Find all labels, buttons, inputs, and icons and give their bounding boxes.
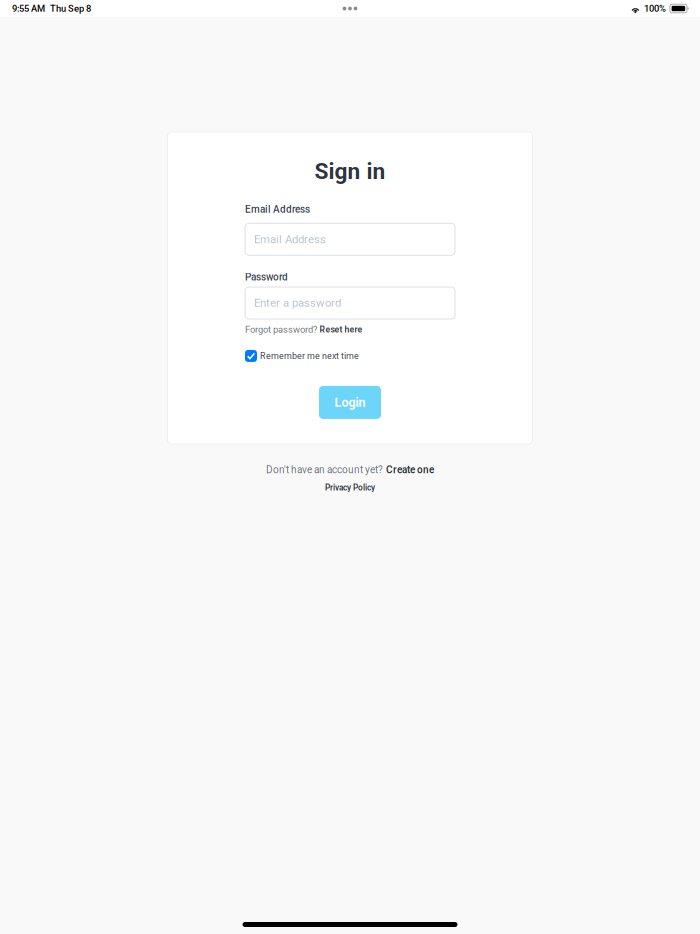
staticText: Email Address: [245, 204, 310, 215]
button[interactable]: Reset here: [319, 324, 362, 335]
staticText: Password: [245, 271, 288, 283]
staticText: Create one: [386, 464, 434, 476]
staticText: 100%: [644, 3, 666, 14]
staticText: Sign in: [314, 158, 385, 185]
staticText: Email Address: [254, 233, 326, 246]
staticText: Enter a password: [254, 296, 341, 310]
button[interactable]: Email Address: [245, 223, 455, 255]
button[interactable]: Login: [319, 386, 381, 419]
staticText: Privacy Policy: [325, 483, 375, 492]
staticText: Thu Sep 8: [50, 3, 91, 14]
staticText: Forgot password?: [245, 324, 317, 335]
staticText: Login: [334, 395, 365, 410]
staticText: Remember me next time: [260, 351, 359, 361]
button[interactable]: Create one: [386, 464, 434, 476]
button[interactable]: Privacy Policy: [325, 483, 375, 492]
staticText: 9:55 AM: [12, 3, 45, 14]
button[interactable]: Remember me next time: [245, 350, 359, 362]
button[interactable]: Password: [245, 287, 455, 319]
staticText: Don't have an account yet?: [266, 464, 383, 476]
staticText: Reset here: [319, 324, 362, 335]
